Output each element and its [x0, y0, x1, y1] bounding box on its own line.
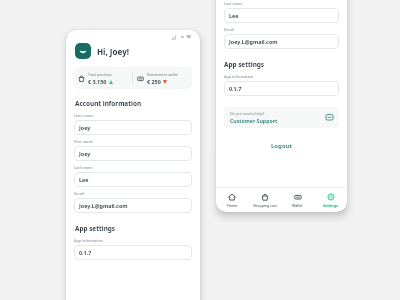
button[interactable]: Do you need a help?: [224, 107, 339, 128]
staticText: Home: [227, 203, 238, 208]
staticText: Joey: [79, 150, 91, 157]
staticText: App information: [74, 238, 104, 243]
staticText: Customer Support: [230, 117, 278, 124]
button[interactable]: 0.1.7: [224, 81, 339, 96]
staticText: App settings: [75, 224, 116, 233]
staticText: Settings: [323, 203, 338, 208]
button[interactable]: Wallet: [281, 188, 314, 212]
staticText: Lee: [229, 12, 239, 19]
staticText: Last name: [74, 165, 93, 170]
staticText: Shopping cart: [253, 203, 277, 208]
staticText: Account information: [75, 99, 142, 108]
staticText: 0.1.7: [79, 249, 92, 256]
staticText: 0.1.7: [229, 85, 242, 92]
staticText: App settings: [224, 60, 265, 69]
staticText: Hi, Joey!: [97, 46, 129, 57]
staticText: Joey: [79, 124, 91, 131]
staticText: First name: [74, 139, 93, 144]
staticText: User name: [74, 113, 94, 118]
staticText: Total purchase: [88, 72, 112, 77]
staticText: Joey.L@gmail.com: [229, 38, 278, 45]
staticText: Lee: [79, 176, 89, 183]
button[interactable]: Settings: [314, 188, 347, 212]
button[interactable]: Joey: [74, 146, 192, 161]
staticText: Joey.L@gmail.com: [79, 202, 128, 209]
button[interactable]: Lee: [224, 8, 339, 23]
staticText: Last name: [224, 1, 243, 6]
staticText: Remained in wallet: [147, 72, 178, 77]
button[interactable]: Lee: [74, 172, 192, 187]
button[interactable]: 0.1.7: [74, 245, 192, 260]
staticText: Logout: [271, 142, 293, 150]
button[interactable]: Joey.L@gmail.com: [224, 34, 339, 49]
staticText: Email: [74, 191, 84, 196]
staticText: Wallet: [292, 203, 303, 208]
staticText: € 250: [147, 78, 161, 85]
button[interactable]: Home: [216, 188, 248, 212]
staticText: App information: [224, 74, 254, 79]
button[interactable]: Joey.L@gmail.com: [74, 198, 192, 213]
button[interactable]: Remained in wallet: [137, 67, 188, 89]
button[interactable]: Shopping cart: [248, 188, 281, 212]
staticText: Email: [224, 27, 234, 32]
button[interactable]: Joey: [74, 120, 192, 135]
button[interactable]: Total purchase: [78, 67, 128, 89]
button[interactable]: Logout: [216, 139, 347, 153]
staticText: Do you need a help?: [230, 111, 265, 116]
staticText: € 3,150: [88, 78, 107, 85]
